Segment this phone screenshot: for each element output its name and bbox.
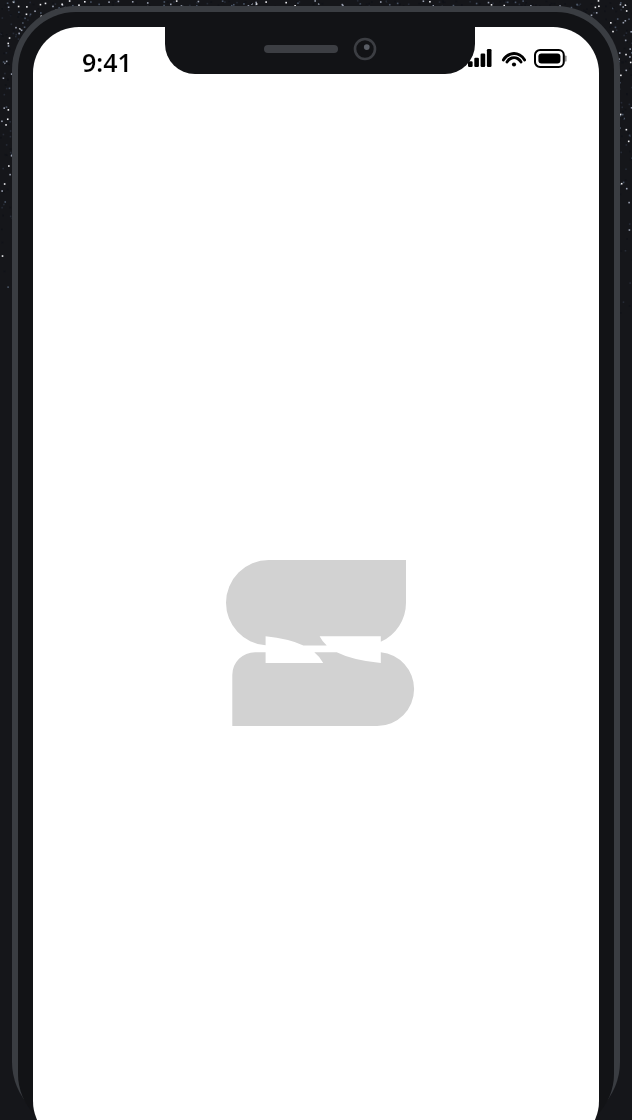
other: Battery full: [535, 50, 567, 67]
button[interactable]: App logo placeholder: [226, 560, 406, 726]
staticText: 9:41: [82, 45, 132, 79]
other: Wi-Fi connected: [502, 49, 526, 67]
other: Cellular signal strength: [468, 49, 493, 67]
